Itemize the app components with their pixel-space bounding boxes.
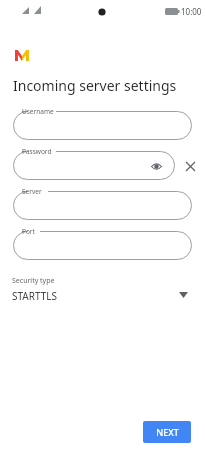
staticText: Server (22, 187, 42, 196)
button[interactable]: Password (13, 151, 175, 180)
button[interactable]: Username (13, 111, 192, 140)
button[interactable]: Clear password (181, 157, 199, 175)
button[interactable]: Show password (149, 159, 163, 173)
staticText: Port (22, 227, 35, 236)
staticText: Password (22, 147, 52, 156)
staticText: Username (22, 107, 54, 116)
button[interactable]: NEXT (143, 421, 191, 443)
staticText: Incoming server settings (13, 76, 177, 95)
button[interactable]: Security type (0, 276, 205, 310)
staticText: Security type (12, 276, 55, 286)
button[interactable]: Port (13, 231, 192, 260)
staticText: NEXT (156, 426, 179, 438)
button[interactable]: Server (13, 191, 192, 220)
staticText: 10:00 (181, 6, 202, 17)
staticText: STARTTLS (12, 289, 58, 303)
